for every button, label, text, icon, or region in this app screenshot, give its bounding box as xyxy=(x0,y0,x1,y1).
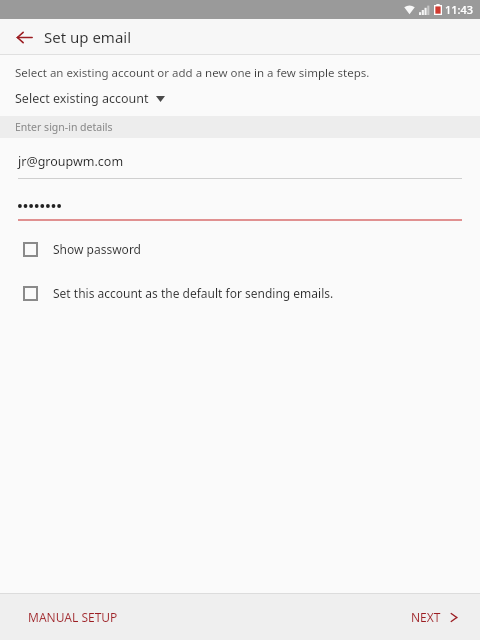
staticText: jr@groupwm.com xyxy=(18,153,124,170)
staticText: Set this account as the default for send… xyxy=(53,285,334,301)
button[interactable] xyxy=(0,200,480,221)
button[interactable]: jr@groupwm.com xyxy=(0,153,480,179)
staticText: Set up email xyxy=(44,27,132,47)
staticText: NEXT xyxy=(411,609,441,625)
staticText: Show password xyxy=(53,241,141,257)
button[interactable]: Show password xyxy=(0,239,480,259)
button[interactable]: Back xyxy=(8,21,40,53)
staticText: Enter sign-in details xyxy=(15,120,113,134)
staticText: Select an existing account or add a new … xyxy=(15,65,370,81)
staticText: MANUAL SETUP xyxy=(28,609,118,625)
staticText: 11:43 xyxy=(445,2,474,17)
button[interactable]: NEXT xyxy=(401,599,468,635)
button[interactable]: Set this account as the default for send… xyxy=(0,283,480,303)
button[interactable]: MANUAL SETUP xyxy=(16,599,130,635)
button[interactable]: Select existing account xyxy=(15,90,165,107)
staticText: Select existing account xyxy=(15,90,149,107)
